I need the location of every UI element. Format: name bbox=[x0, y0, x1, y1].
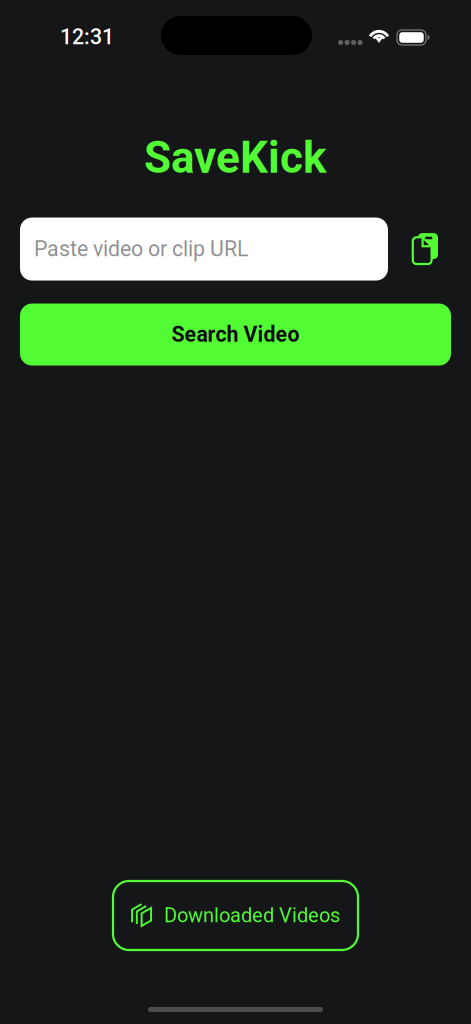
button[interactable]: Paste from clipboard bbox=[402, 218, 448, 281]
staticText: Paste video or clip URL bbox=[34, 237, 248, 262]
staticText: 12:31 bbox=[60, 24, 114, 49]
staticText: SaveKick bbox=[144, 132, 327, 184]
button[interactable]: Search Video bbox=[20, 304, 451, 366]
staticText: Search Video bbox=[171, 322, 299, 347]
button[interactable]: Downloaded Videos bbox=[113, 881, 358, 950]
button[interactable]: Paste video or clip URL bbox=[20, 218, 388, 281]
staticText: Downloaded Videos bbox=[164, 904, 340, 927]
